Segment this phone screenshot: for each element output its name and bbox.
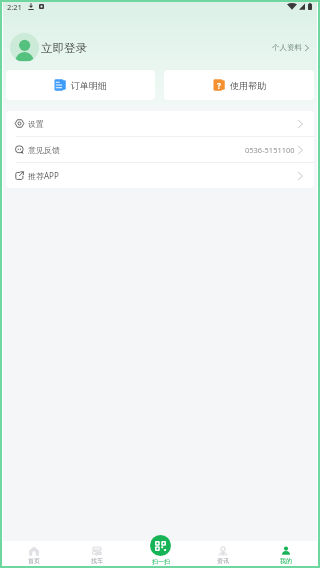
button[interactable]: 推荐APP [6,163,314,188]
staticText: 个人资料 [272,43,302,52]
staticText: 设置 [28,119,44,129]
staticText: 我的 [280,557,292,565]
button[interactable]: ? [164,70,314,100]
staticText: ? [217,80,221,91]
staticText: 扫一扫 [152,558,170,566]
button[interactable]: 我的 [254,541,317,566]
button[interactable]: 找车 [65,541,128,566]
staticText: 2:21 [7,2,22,12]
staticText: 首页 [28,557,40,565]
staticText: 意见反馈 [28,145,60,155]
staticText: 0536-5151100 [245,145,295,155]
staticText: 立即登录 [41,41,87,55]
staticText: 使用帮助 [230,80,266,91]
button[interactable]: 意见反馈 [6,137,314,162]
staticText: 资讯 [217,557,229,565]
button[interactable]: 立即登录 [3,29,317,66]
button[interactable]: 设置 [6,111,314,136]
staticText: 找车 [91,557,103,565]
button[interactable]: 扫一扫 [150,535,171,566]
button[interactable]: 首页 [3,541,65,566]
button[interactable]: 订单明细 [6,70,155,100]
staticText: 订单明细 [71,80,107,91]
staticText: 推荐APP [28,170,59,181]
button[interactable]: 资讯 [191,541,254,566]
